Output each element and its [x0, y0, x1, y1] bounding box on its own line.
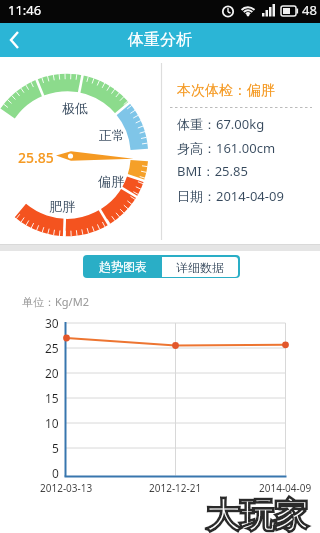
staticText: 25	[45, 340, 59, 356]
staticText: 15	[45, 390, 59, 406]
staticText: 48	[302, 1, 317, 19]
staticText: 2012-03-13	[40, 481, 93, 495]
staticText: 11:46	[8, 1, 42, 19]
staticText: 25.85	[18, 148, 54, 167]
button[interactable]	[0, 23, 40, 57]
staticText: 2014-04-09	[259, 481, 312, 495]
staticText: 偏胖	[98, 173, 124, 189]
staticText: 体重：67.00kg	[177, 115, 265, 133]
staticText: 本次体检：偏胖	[177, 82, 275, 100]
staticText: 肥胖	[49, 198, 75, 214]
staticText: 大玩家	[206, 494, 308, 533]
staticText: 身高：161.00cm	[177, 139, 276, 157]
staticText: 单位：Kg/M2	[22, 294, 89, 309]
staticText: BMI：25.85	[177, 162, 248, 180]
staticText: 极低	[62, 100, 88, 116]
staticText: 日期：2014-04-09	[177, 187, 284, 205]
staticText: 正常	[99, 127, 125, 143]
staticText: 0	[52, 465, 59, 481]
button[interactable]: 详细数据	[162, 257, 238, 277]
button[interactable]: 趋势图表	[83, 255, 162, 278]
staticText: 10	[45, 415, 59, 431]
staticText: 20	[45, 365, 59, 381]
staticText: 5	[52, 440, 59, 456]
staticText: 体重分析	[128, 30, 192, 50]
staticText: 2012-12-21	[149, 481, 202, 495]
staticText: 详细数据	[176, 260, 224, 275]
staticText: 30	[45, 315, 59, 331]
staticText: 趋势图表	[99, 259, 147, 274]
